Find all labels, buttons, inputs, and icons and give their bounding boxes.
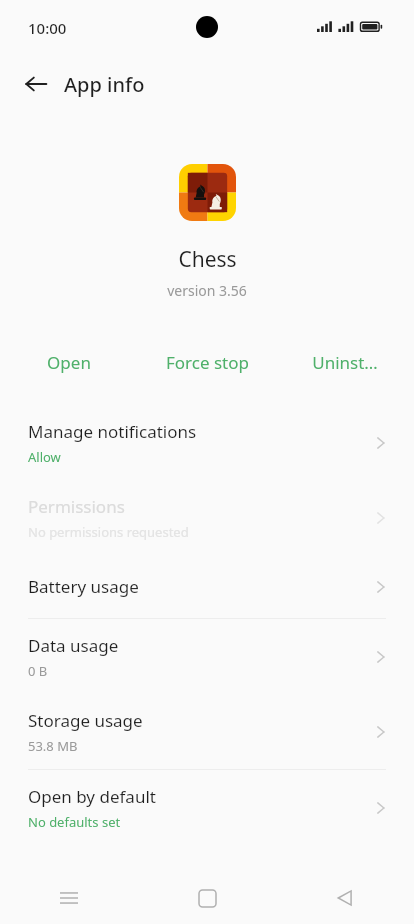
staticText: No defaults set bbox=[28, 813, 121, 831]
button[interactable]: Permissions bbox=[0, 480, 414, 555]
staticText: Manage notifications bbox=[28, 420, 197, 443]
button[interactable]: Force stop bbox=[138, 350, 276, 374]
button[interactable]: Battery usage bbox=[0, 555, 414, 618]
staticText: Uninst… bbox=[312, 351, 378, 374]
staticText: version 3.56 bbox=[167, 281, 247, 300]
button[interactable]: Back bbox=[14, 62, 58, 106]
button[interactable]: Open bbox=[0, 350, 138, 374]
staticText: 53.8 MB bbox=[28, 737, 78, 755]
staticText: Chess bbox=[178, 245, 237, 274]
staticText: Storage usage bbox=[28, 709, 143, 732]
button[interactable]: Back bbox=[276, 872, 414, 924]
staticText: Allow bbox=[28, 448, 61, 466]
button[interactable]: Data usage bbox=[0, 619, 414, 694]
button[interactable]: Home bbox=[138, 872, 276, 924]
button[interactable]: Storage usage bbox=[0, 694, 414, 769]
staticText: No permissions requested bbox=[28, 523, 189, 541]
staticText: Open by default bbox=[28, 785, 156, 808]
staticText: 10:00 bbox=[28, 18, 67, 38]
staticText: Force stop bbox=[166, 351, 249, 374]
button[interactable]: Recent apps bbox=[0, 872, 138, 924]
staticText: App info bbox=[64, 71, 145, 98]
staticText: Data usage bbox=[28, 634, 119, 657]
button[interactable]: Uninst… bbox=[276, 350, 414, 374]
button[interactable]: Manage notifications bbox=[0, 405, 414, 480]
button[interactable]: Open by default bbox=[0, 770, 414, 845]
staticText: Battery usage bbox=[28, 575, 139, 598]
staticText: 0 B bbox=[28, 662, 48, 680]
staticText: Permissions bbox=[28, 495, 125, 518]
staticText: Open bbox=[47, 351, 91, 374]
